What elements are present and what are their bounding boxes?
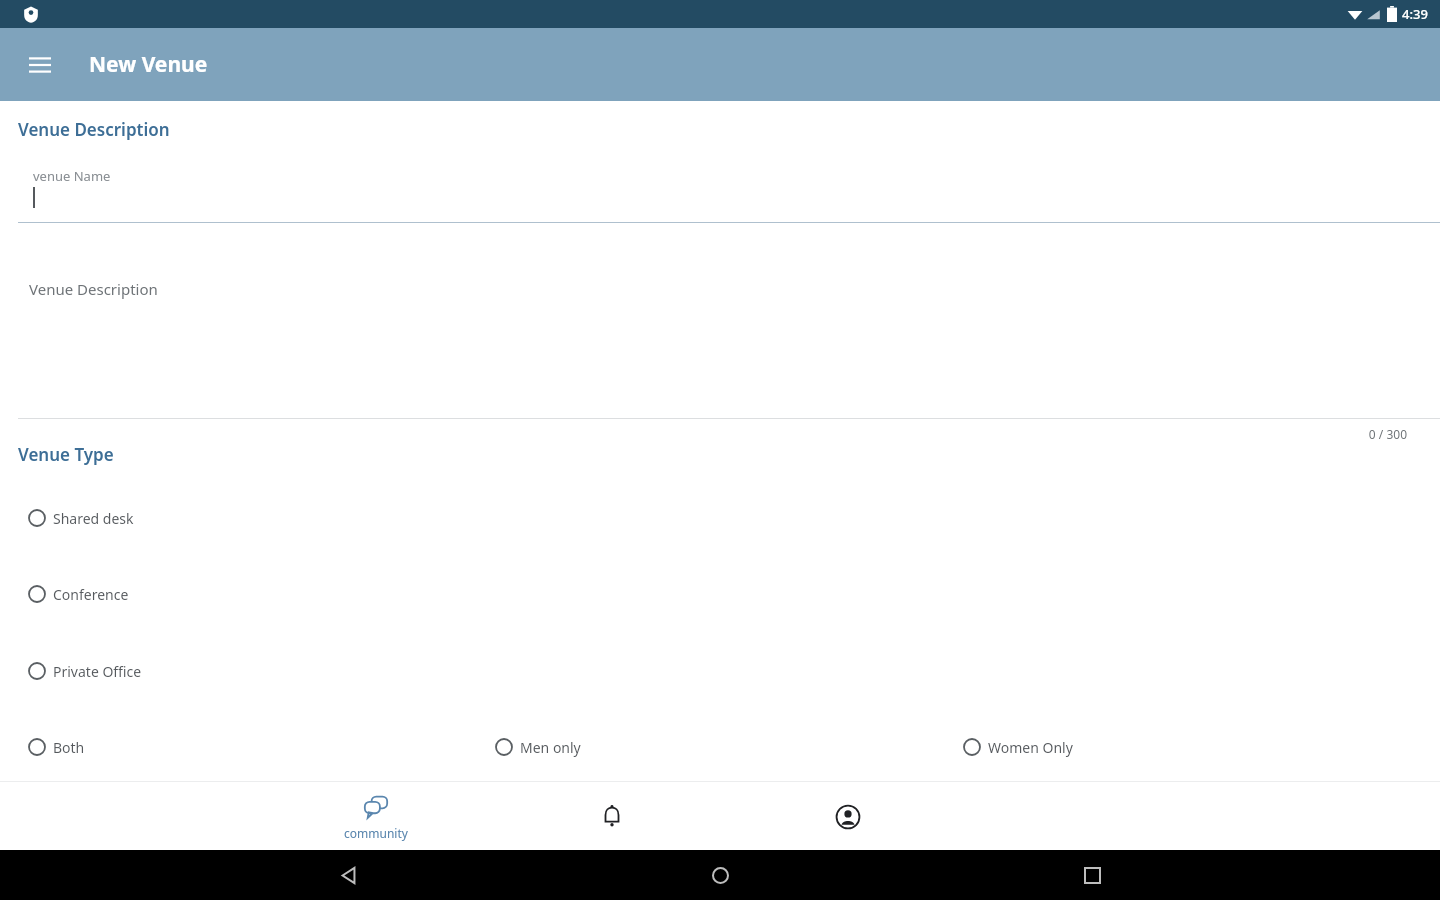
staticText: community	[344, 825, 408, 841]
staticText: Conference	[53, 585, 129, 604]
button[interactable]	[0, 241, 1440, 416]
staticText: Women Only	[988, 738, 1073, 757]
button[interactable]: Men only	[495, 732, 581, 762]
staticText: 4:39	[1402, 5, 1428, 23]
staticText: Private Office	[53, 662, 142, 681]
staticText: New Venue	[89, 50, 208, 79]
button[interactable]: Notifications	[552, 782, 672, 850]
staticText: Venue Description	[29, 279, 158, 299]
button[interactable]: Open navigation menu	[16, 41, 64, 89]
staticText: Shared desk	[53, 509, 134, 528]
button[interactable]: Account	[788, 782, 908, 850]
button[interactable]: community	[316, 782, 436, 850]
staticText: Venue Type	[18, 443, 114, 466]
staticText: venue Name	[33, 167, 111, 185]
staticText: 0 / 300	[1368, 426, 1407, 442]
button[interactable]: Women Only	[963, 732, 1073, 762]
button[interactable]: Shared desk	[28, 503, 134, 533]
staticText: Men only	[520, 738, 581, 757]
staticText: Both	[53, 738, 85, 757]
button[interactable]: Private Office	[28, 656, 142, 686]
button[interactable]: Recent apps	[1068, 851, 1116, 899]
button[interactable]	[0, 161, 1440, 221]
button[interactable]: Conference	[28, 579, 129, 609]
staticText: Venue Description	[18, 118, 170, 141]
button[interactable]: Both	[28, 732, 85, 762]
button[interactable]: Back	[324, 851, 372, 899]
button[interactable]: Home	[696, 851, 744, 899]
